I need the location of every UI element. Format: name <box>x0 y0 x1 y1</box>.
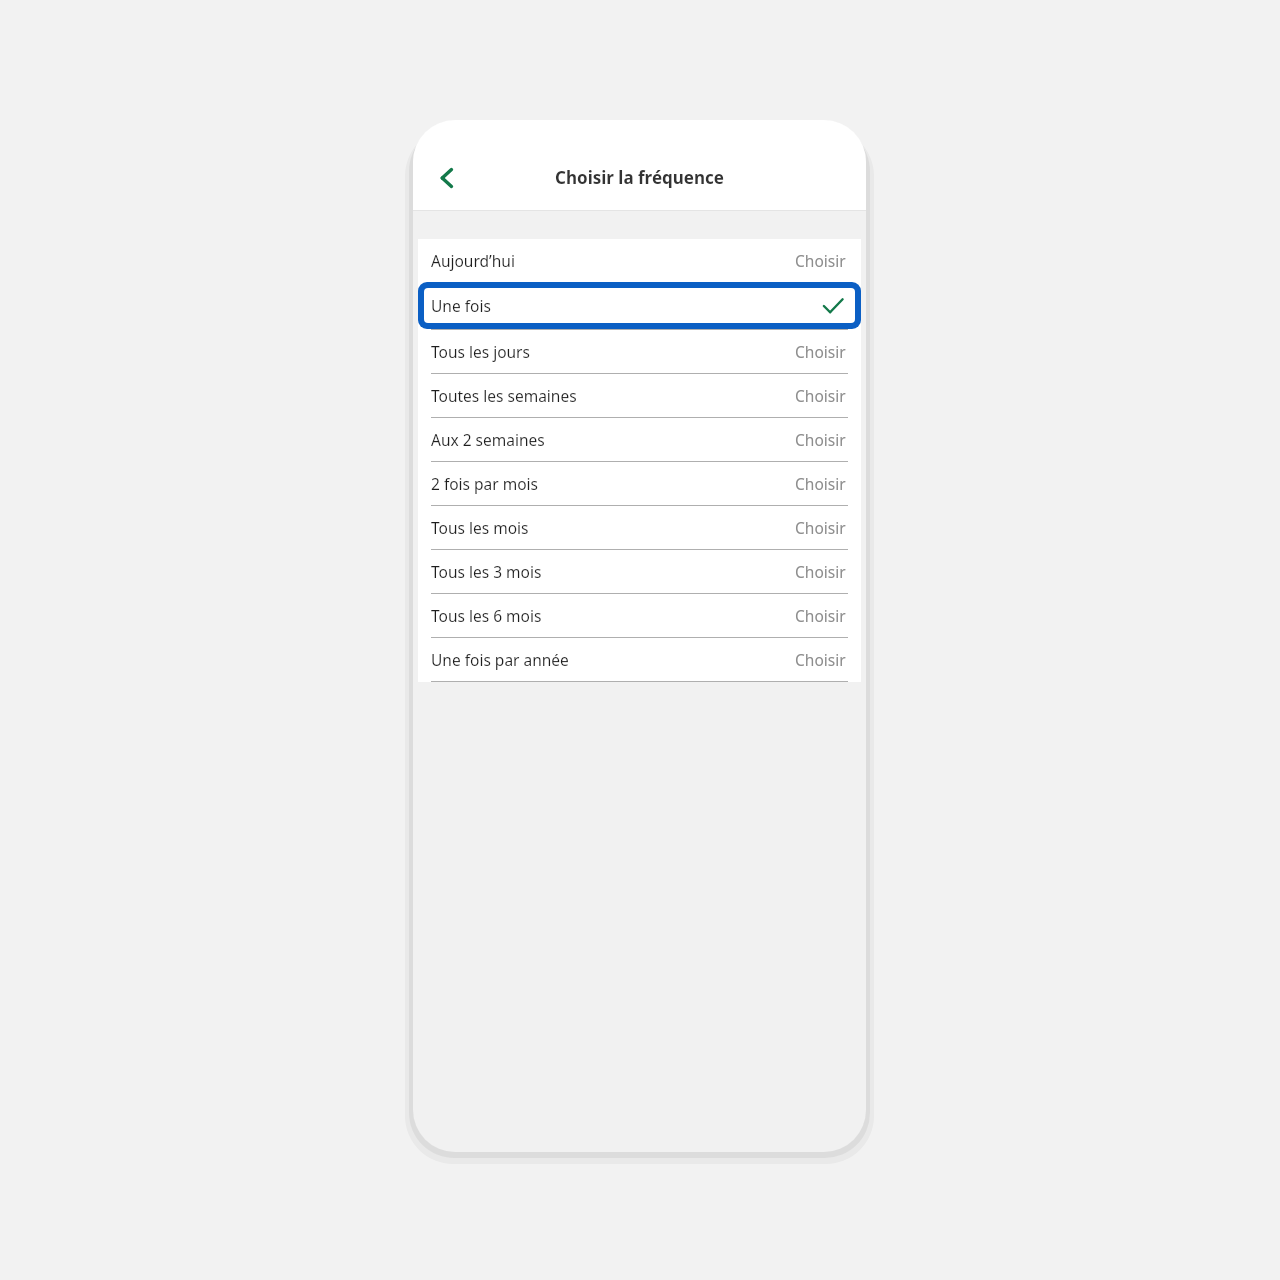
staticText: Choisir <box>795 385 846 406</box>
staticText: Choisir <box>795 429 846 450</box>
staticText: Tous les 3 mois <box>431 561 542 582</box>
staticText: Choisir <box>795 341 846 362</box>
staticText: Une fois par année <box>431 649 569 670</box>
other: Sélectionné <box>821 294 845 318</box>
button[interactable]: Une fois <box>418 282 861 329</box>
staticText: Choisir <box>795 561 846 582</box>
button[interactable]: Aujourd’hui <box>418 239 861 282</box>
staticText: Choisir la fréquence <box>413 166 866 189</box>
button[interactable]: Une fois par année <box>418 638 861 681</box>
staticText: Tous les mois <box>431 517 529 538</box>
button[interactable]: Tous les 6 mois <box>418 594 861 637</box>
staticText: Toutes les semaines <box>431 385 577 406</box>
staticText: Aujourd’hui <box>431 250 515 271</box>
staticText: Aux 2 semaines <box>431 429 545 450</box>
button[interactable]: Tous les jours <box>418 330 861 373</box>
staticText: Choisir <box>795 250 846 271</box>
button[interactable]: 2 fois par mois <box>418 462 861 505</box>
staticText: Choisir <box>795 517 846 538</box>
staticText: Choisir <box>795 605 846 626</box>
staticText: Tous les 6 mois <box>431 605 542 626</box>
button[interactable]: Retour <box>421 152 473 204</box>
staticText: Tous les jours <box>431 341 530 362</box>
button[interactable]: Tous les 3 mois <box>418 550 861 593</box>
staticText: Une fois <box>431 295 491 316</box>
button[interactable]: Aux 2 semaines <box>418 418 861 461</box>
staticText: Choisir <box>795 649 846 670</box>
button[interactable]: Toutes les semaines <box>418 374 861 417</box>
staticText: 2 fois par mois <box>431 473 539 494</box>
button[interactable]: Tous les mois <box>418 506 861 549</box>
staticText: Choisir <box>795 473 846 494</box>
